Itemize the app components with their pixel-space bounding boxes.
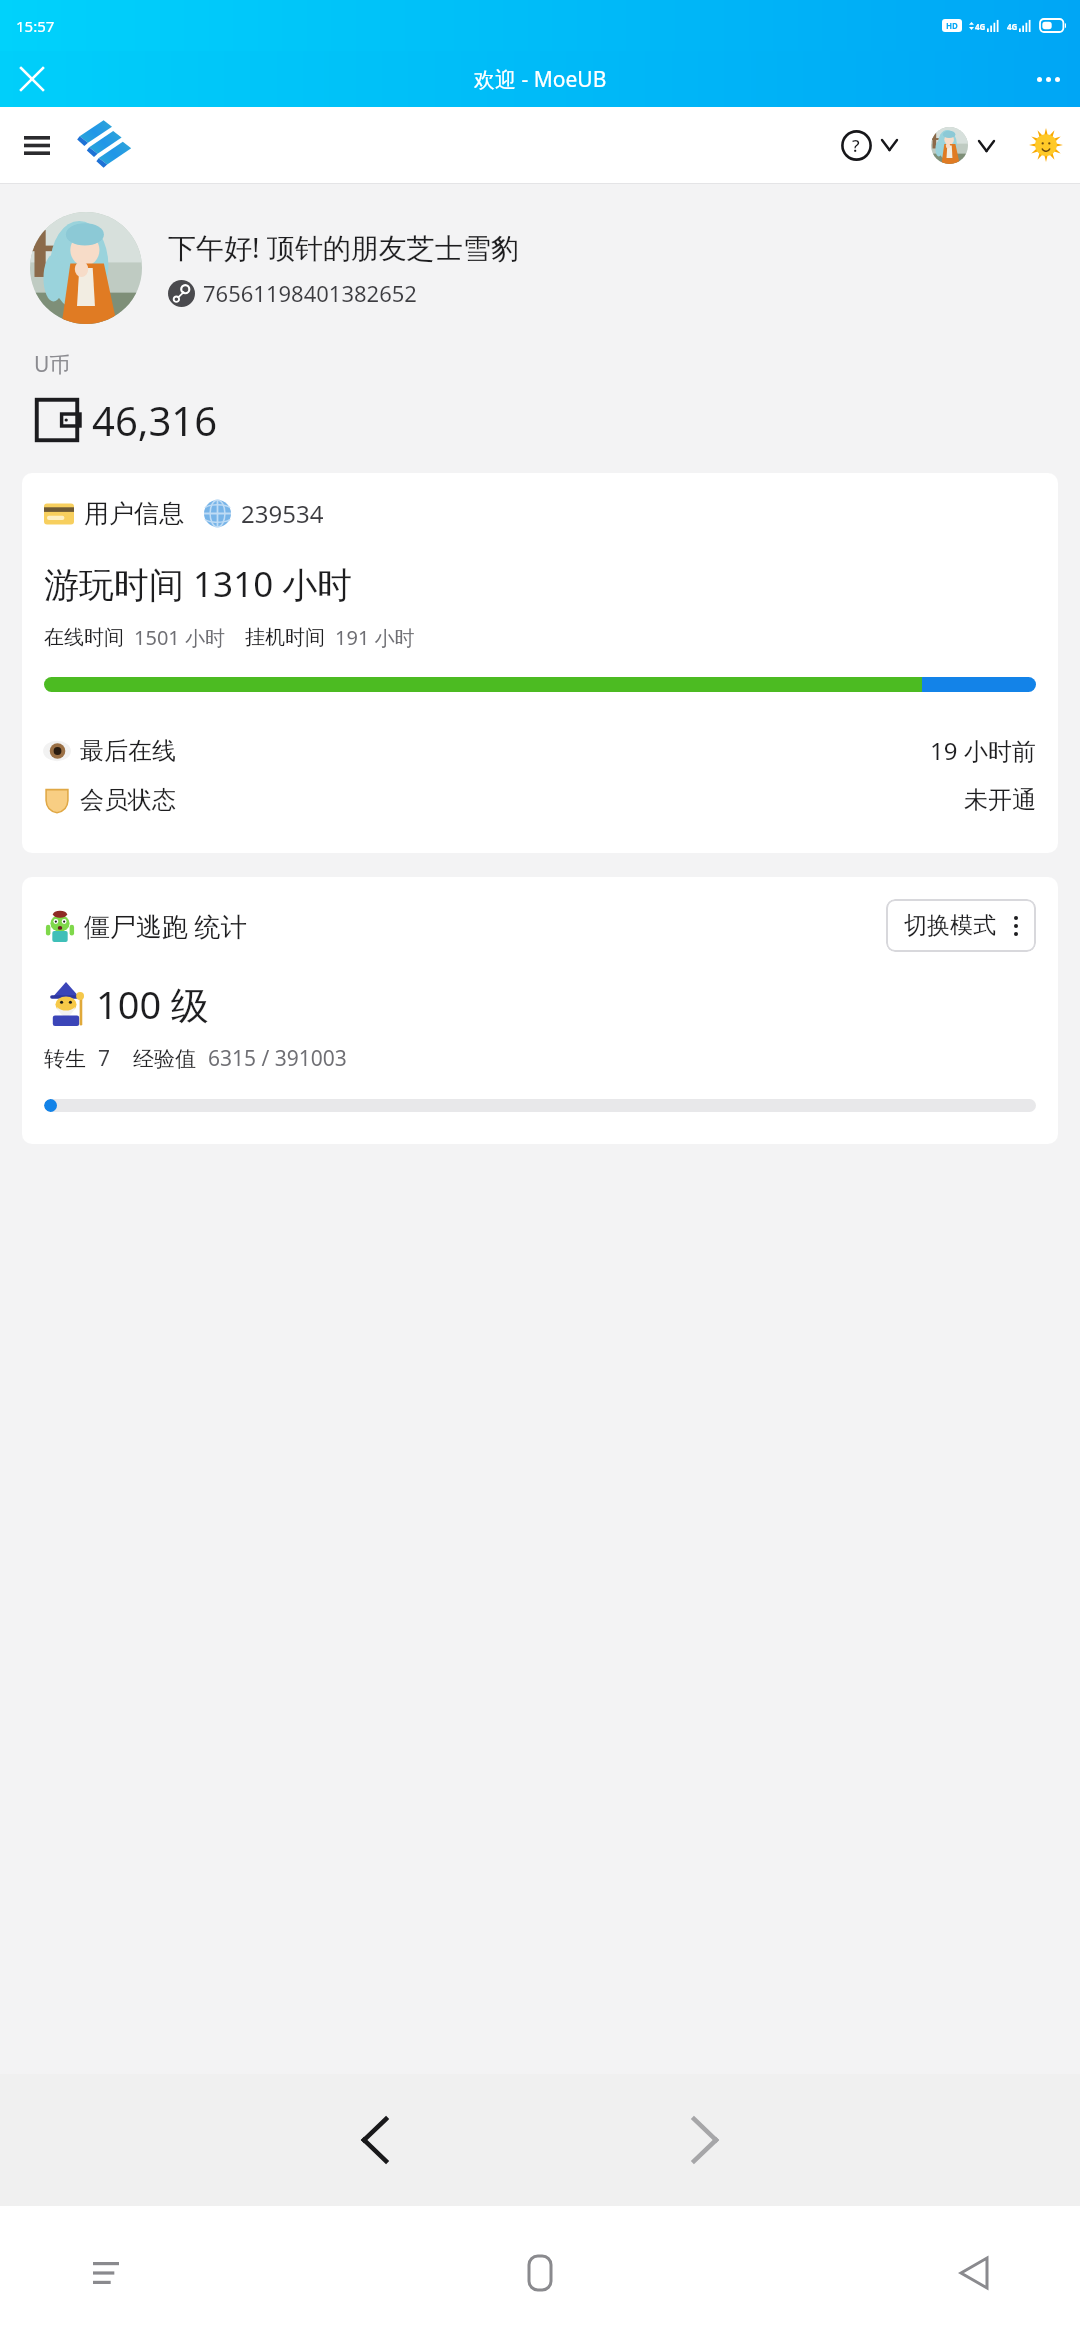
button[interactable]: Next page	[650, 2085, 760, 2195]
staticText: 僵尸逃跑 统计	[84, 908, 247, 944]
other: Help	[839, 128, 873, 162]
staticText: 欢迎 - MoeUB	[474, 65, 607, 94]
staticText: 经验值	[133, 1046, 196, 1072]
staticText: 7	[98, 1044, 111, 1073]
staticText: 4G	[975, 21, 986, 32]
button[interactable]: 用户信息	[22, 473, 1058, 853]
staticText: ?	[852, 134, 860, 157]
staticText: 挂机时间	[245, 625, 325, 650]
staticText: 19 小时前	[930, 734, 1036, 767]
staticText: 未开通	[964, 785, 1036, 815]
staticText: U币	[34, 350, 71, 379]
staticText: 最后在线	[80, 736, 176, 766]
staticText: 在线时间	[44, 625, 124, 650]
staticText: 1501 小时	[134, 624, 225, 651]
staticText: 239534	[241, 497, 324, 530]
staticText: 46,316	[92, 393, 218, 447]
staticText: 切换模式	[904, 911, 996, 940]
staticText: 15:57	[16, 16, 55, 36]
staticText: HD	[946, 20, 958, 31]
staticText: 4G	[1007, 21, 1018, 32]
button[interactable]: Close	[8, 55, 56, 103]
button[interactable]: 切换模式	[886, 899, 1036, 952]
button[interactable]: Recent apps	[58, 2225, 154, 2321]
staticText: 6315 / 391003	[208, 1044, 347, 1073]
button[interactable]: 会员状态	[44, 785, 1036, 815]
staticText: 100 级	[96, 978, 210, 1030]
button[interactable]: Back	[926, 2225, 1022, 2321]
staticText: 用户信息	[84, 498, 184, 529]
staticText: 会员状态	[80, 785, 176, 815]
button[interactable]: Home	[492, 2225, 588, 2321]
button[interactable]: Help	[835, 128, 901, 162]
button[interactable]: Home logo	[74, 116, 138, 174]
button[interactable]: 最后在线	[44, 734, 1036, 767]
staticText: 转生	[44, 1046, 86, 1072]
button[interactable]: More options	[1024, 55, 1072, 103]
button[interactable]	[927, 127, 998, 164]
button[interactable]: Theme	[1024, 123, 1068, 167]
staticText: 下午好! 顶针的朋友芝士雪豹	[168, 228, 519, 266]
staticText: 76561198401382652	[203, 278, 417, 308]
button[interactable]: Previous page	[320, 2085, 430, 2195]
staticText: 191 小时	[335, 624, 415, 651]
button[interactable]: Menu	[10, 118, 64, 172]
staticText: 游玩时间 1310 小时	[44, 560, 353, 608]
